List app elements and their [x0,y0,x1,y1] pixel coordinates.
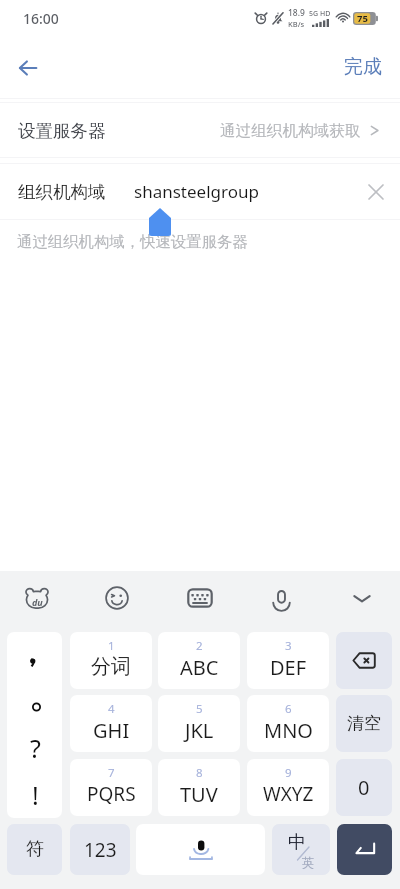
button[interactable]: 8 [158,759,240,816]
staticText: shansteelgroup [134,180,259,203]
button[interactable]: 中 [272,824,330,875]
button[interactable]: 6 [247,695,329,752]
staticText: 4 [108,701,115,717]
button[interactable]: 9 [247,759,329,816]
button[interactable]: 1 [70,632,152,689]
staticText: 16:00 [23,9,59,28]
staticText: 18.9 [288,7,305,19]
button[interactable]: 5 [158,695,240,752]
button[interactable]: 0 [336,759,392,816]
button[interactable]: Punctuation [7,632,62,818]
staticText: 设置服务器 [18,120,106,142]
staticText: 5 [196,701,203,717]
staticText: MNO [264,717,313,744]
staticText: 1 [108,638,115,654]
staticText: 75 [357,12,368,25]
staticText: 2 [196,638,203,654]
button[interactable]: 123 [70,824,130,875]
staticText: 符 [26,838,44,861]
staticText: ABC [180,654,219,681]
staticText: 清空 [347,713,381,734]
staticText: 分词 [91,654,131,679]
staticText: DEF [270,654,307,681]
staticText: 完成 [344,55,382,79]
staticText: 123 [84,837,117,863]
staticText: 9 [285,765,292,781]
staticText: GHI [93,717,130,744]
button[interactable]: Clear text [357,173,395,211]
button[interactable]: Space / voice input [136,824,265,875]
staticText: 通过组织机构域获取 [220,121,361,141]
button[interactable]: 2 [158,632,240,689]
staticText: 0 [358,774,370,801]
staticText: ! [32,778,39,812]
button[interactable]: 符 [7,824,62,875]
staticText: 中 [288,831,306,854]
staticText: PQRS [87,781,136,807]
staticText: WXYZ [263,781,314,807]
button[interactable]: 3 [247,632,329,689]
staticText: 组织机构域 [18,181,106,203]
button[interactable]: Keyboard layout [182,580,218,616]
staticText: KB/s [288,19,305,29]
button[interactable]: Enter [337,824,392,875]
staticText: 英 [302,855,315,871]
button[interactable]: Hide keyboard [344,580,380,616]
button[interactable]: Voice input [263,580,299,616]
button[interactable]: Back [5,45,50,90]
staticText: 5G HD [309,9,331,19]
button[interactable]: 7 [70,759,152,816]
button[interactable]: 4 [70,695,152,752]
staticText: du [32,596,43,608]
staticText: JKL [185,717,214,744]
button[interactable]: Backspace [336,632,392,689]
button[interactable]: 设置服务器 [0,103,400,158]
staticText: ? [30,731,41,765]
staticText: 3 [285,638,292,654]
staticText: 6 [285,701,292,717]
button[interactable]: 完成 [328,43,400,91]
staticText: 7 [108,765,115,781]
staticText: 通过组织机构域，快速设置服务器 [17,232,248,251]
staticText: 8 [196,765,203,781]
button[interactable]: Emoji [99,580,135,616]
button[interactable]: Input method [19,580,55,616]
button[interactable]: 清空 [336,695,392,752]
staticText: TUV [180,781,218,808]
